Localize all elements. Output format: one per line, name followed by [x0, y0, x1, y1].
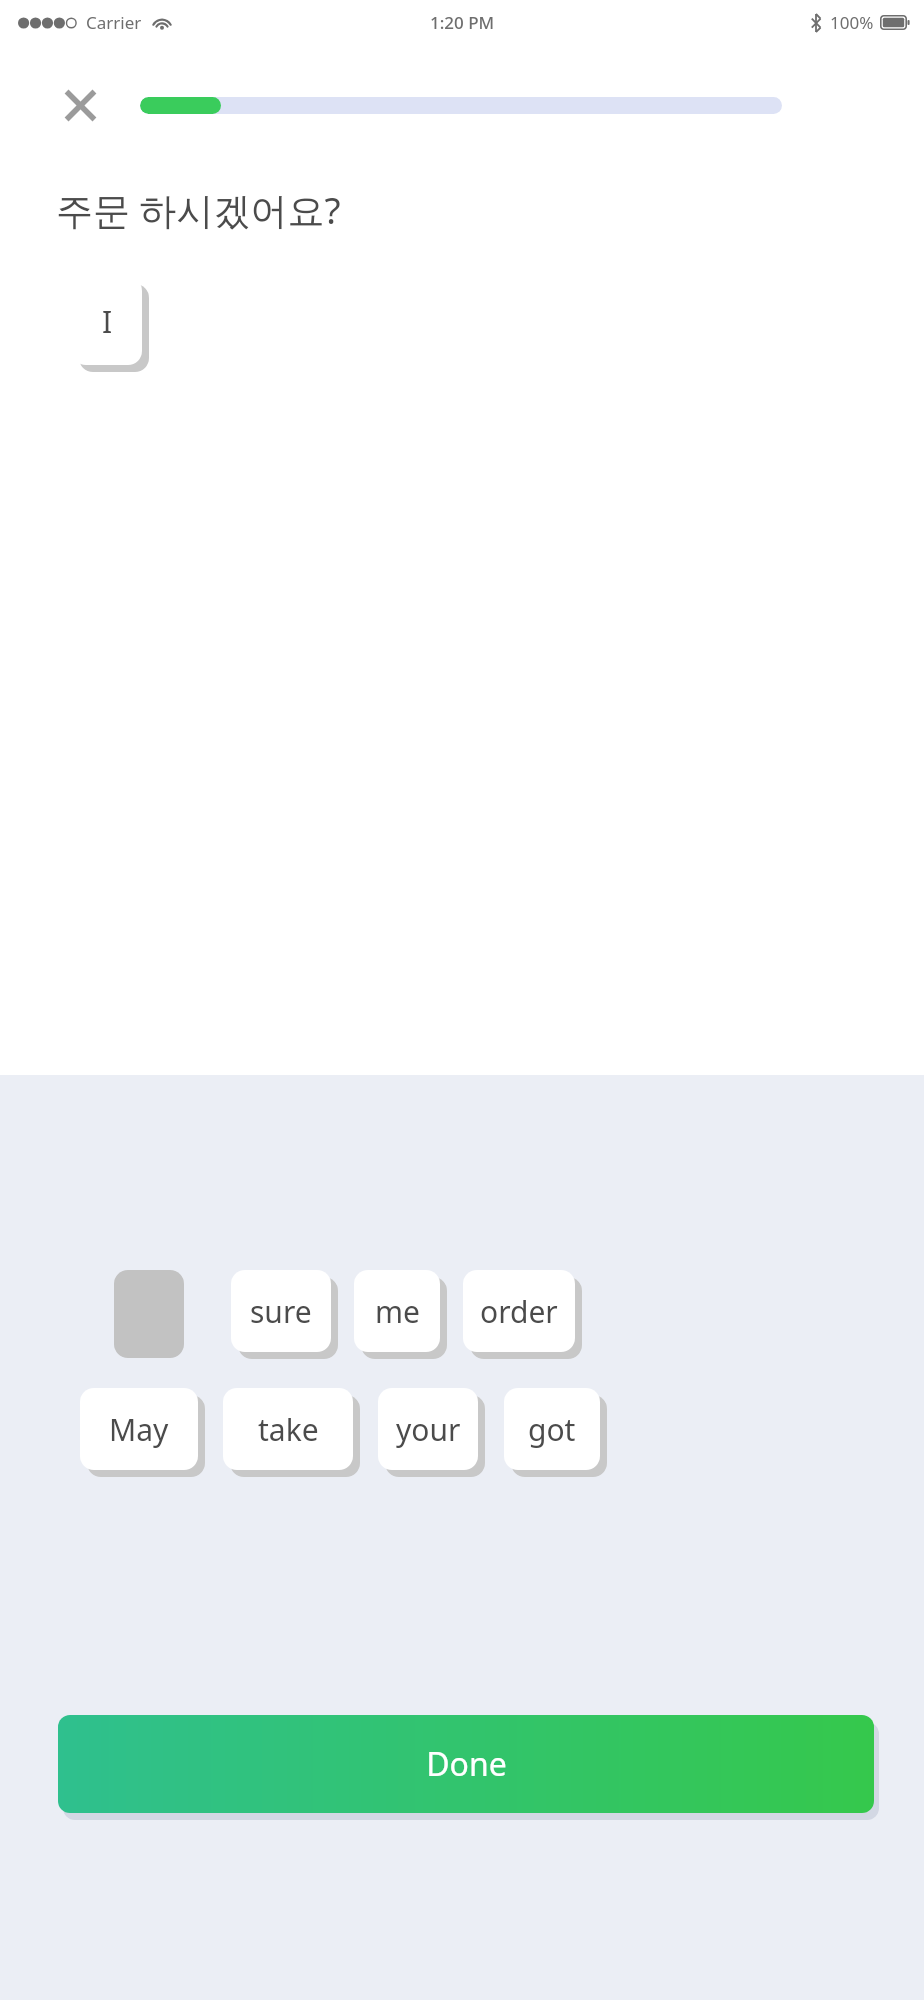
staticText: I: [102, 301, 113, 342]
button[interactable]: got: [504, 1388, 610, 1480]
button[interactable]: your: [378, 1388, 488, 1480]
button[interactable]: Done: [58, 1715, 874, 1813]
button[interactable]: Close: [56, 81, 104, 129]
button[interactable]: me: [354, 1270, 450, 1362]
staticText: 100%: [830, 11, 874, 34]
staticText: Done: [426, 1742, 507, 1786]
staticText: me: [375, 1291, 420, 1332]
staticText: Carrier: [86, 11, 142, 34]
button[interactable]: order: [463, 1270, 585, 1362]
staticText: take: [258, 1409, 319, 1450]
button[interactable]: I: [72, 277, 152, 375]
staticText: May: [109, 1409, 169, 1450]
button[interactable]: sure: [231, 1270, 341, 1362]
button[interactable]: take: [223, 1388, 363, 1480]
staticText: order: [480, 1291, 558, 1332]
staticText: 주문 하시겠어요?: [56, 184, 341, 235]
staticText: your: [396, 1409, 461, 1450]
staticText: sure: [250, 1291, 312, 1332]
button[interactable]: May: [80, 1388, 208, 1480]
staticText: got: [528, 1409, 576, 1450]
staticText: 1:20 PM: [430, 11, 495, 34]
